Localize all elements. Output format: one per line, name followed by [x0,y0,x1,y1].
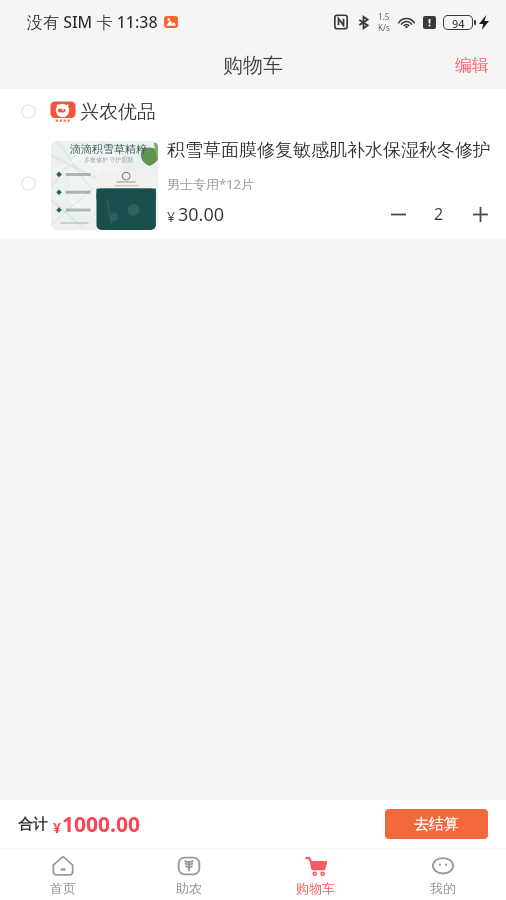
staticText: 购物车 [223,53,283,78]
button[interactable]: 首页 [0,849,126,900]
staticText: 首页 [50,880,76,896]
staticText: 购物车 [296,880,335,896]
button[interactable]: Select item [0,134,506,238]
staticText: 没有 SIM 卡 11:38 [27,11,158,33]
button[interactable]: 助农 [126,849,252,900]
staticText: 我的 [430,880,456,896]
staticText: 2 [434,203,444,225]
button[interactable]: 去结算 [385,809,488,839]
button[interactable]: Increase quantity [465,199,495,229]
staticText: ¥ [53,818,62,837]
button[interactable]: 我的 [379,849,506,900]
button[interactable]: Decrease quantity [383,199,413,229]
button[interactable]: 购物车 [252,849,379,900]
button[interactable]: 编辑 [439,46,506,87]
staticText: 积雪草面膜修复敏感肌补水保湿秋冬修护 [167,139,491,162]
staticText: 1000.00 [62,810,140,839]
staticText: 去结算 [414,815,459,834]
staticText: 助农 [176,880,202,896]
staticText: 1.5 [378,11,390,22]
staticText: ¥ [167,207,176,226]
staticText: 编辑 [455,55,489,76]
staticText: 94 [452,16,465,29]
staticText: 多重修护 守护肌肤 [84,156,134,164]
button[interactable]: Select item [21,104,36,119]
staticText: 兴农优品 [80,100,156,124]
button[interactable]: Select item [0,89,506,134]
staticText: 滴滴积雪草精粹 [70,142,147,156]
staticText: 男士专用*12片 [167,175,255,193]
staticText: 30.00 [178,202,225,227]
button[interactable]: Select item [21,176,36,191]
staticText: K/s [378,22,390,33]
staticText: 合计 [18,815,48,834]
